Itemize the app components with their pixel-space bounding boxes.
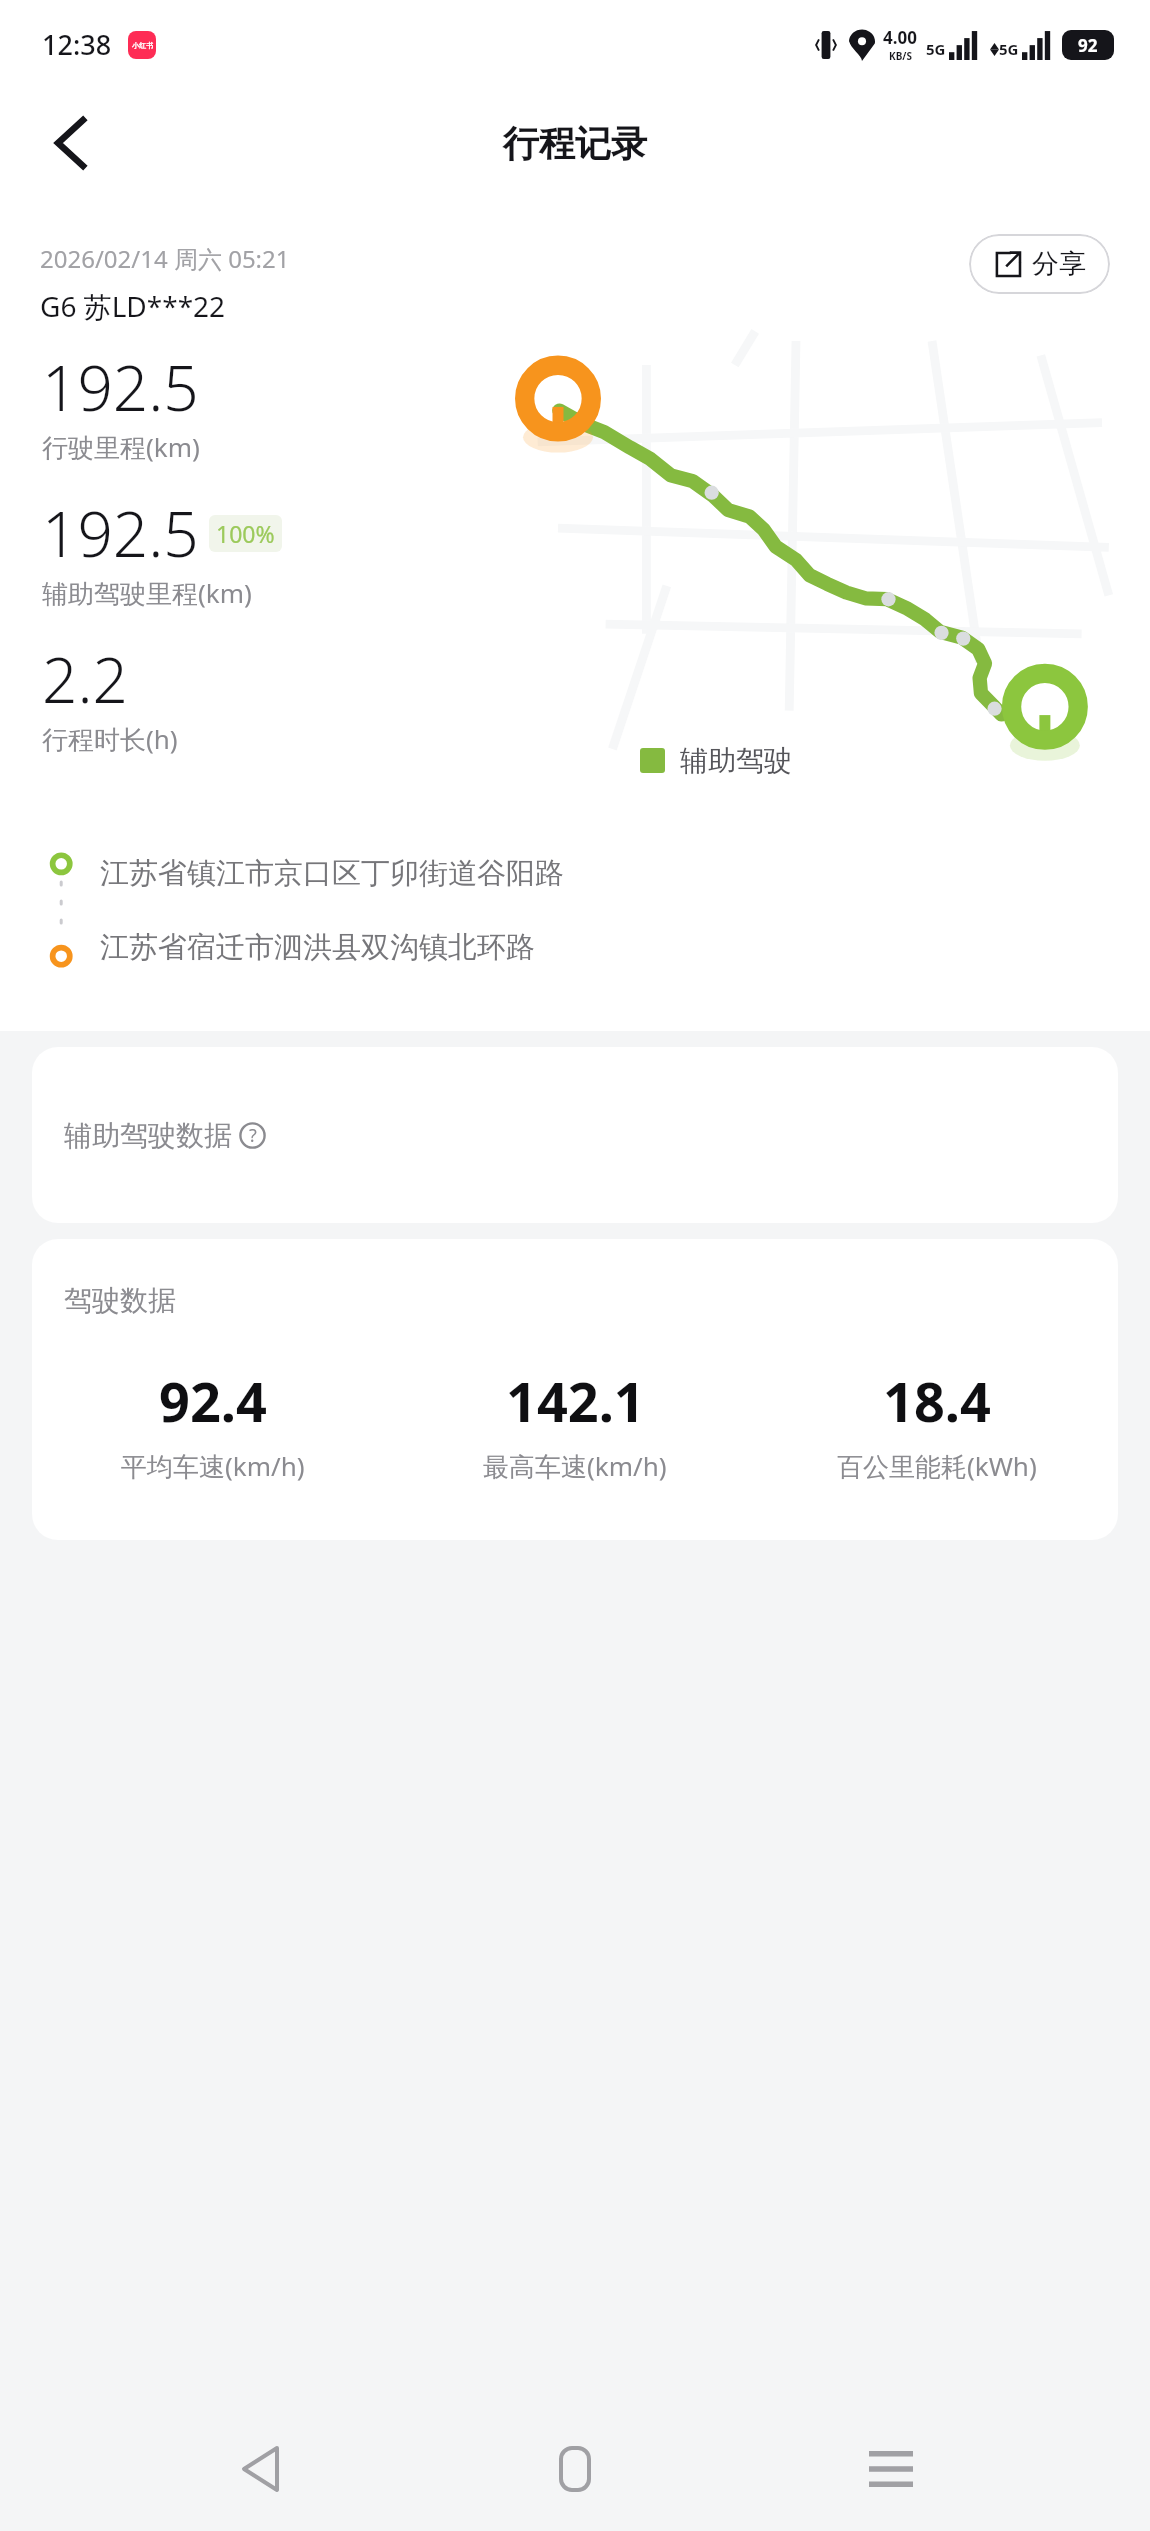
staticText: 分享 — [1032, 247, 1086, 281]
staticText: 百公里能耗(kWh) — [837, 1448, 1037, 1484]
staticText: 4.00 — [883, 26, 917, 49]
staticText: 江苏省宿迁市泗洪县双沟镇北环路 — [100, 929, 535, 966]
staticText: 辅助驾驶数据 — [64, 1118, 232, 1153]
staticText: ? — [249, 1123, 257, 1148]
button[interactable]: 分享 — [969, 234, 1110, 294]
staticText: 2026/02/14 周六 05:21 — [40, 242, 290, 275]
staticText: 5G — [999, 39, 1019, 59]
staticText: 江苏省镇江市京口区丁卯街道谷阳路 — [100, 855, 564, 892]
staticText: 行驶里程(km) — [42, 429, 200, 465]
button[interactable]: Home — [519, 2413, 631, 2525]
staticText: 行程时长(h) — [42, 721, 178, 757]
staticText: G6 苏LD***22 — [40, 287, 226, 325]
staticText: 12:38 — [42, 26, 112, 63]
staticText: 192.5 — [42, 491, 199, 575]
staticText: KB/S — [889, 49, 912, 63]
staticText: 2.2 — [42, 637, 128, 721]
staticText: 92.4 — [159, 1364, 267, 1438]
staticText: 小红书 — [132, 41, 153, 50]
staticText: 192.5 — [42, 345, 199, 429]
button[interactable]: Recent apps — [835, 2413, 947, 2525]
staticText: 5G — [926, 39, 946, 59]
staticText: 平均车速(km/h) — [121, 1448, 305, 1484]
staticText: 142.1 — [506, 1364, 645, 1438]
button[interactable]: Back — [36, 110, 102, 176]
button[interactable]: Back — [204, 2413, 316, 2525]
staticText: 辅助驾驶 — [680, 743, 792, 778]
button[interactable]: 辅助驾驶数据 — [32, 1047, 1118, 1223]
staticText: 驾驶数据 — [64, 1283, 176, 1318]
staticText: 18.4 — [883, 1364, 991, 1438]
staticText: 92 — [1078, 34, 1098, 57]
staticText: 行程记录 — [503, 121, 647, 166]
staticText: 辅助驾驶里程(km) — [42, 575, 252, 611]
button[interactable]: 驾驶数据 — [32, 1239, 1118, 1540]
staticText: 100% — [216, 518, 275, 549]
staticText: 最高车速(km/h) — [483, 1448, 667, 1484]
